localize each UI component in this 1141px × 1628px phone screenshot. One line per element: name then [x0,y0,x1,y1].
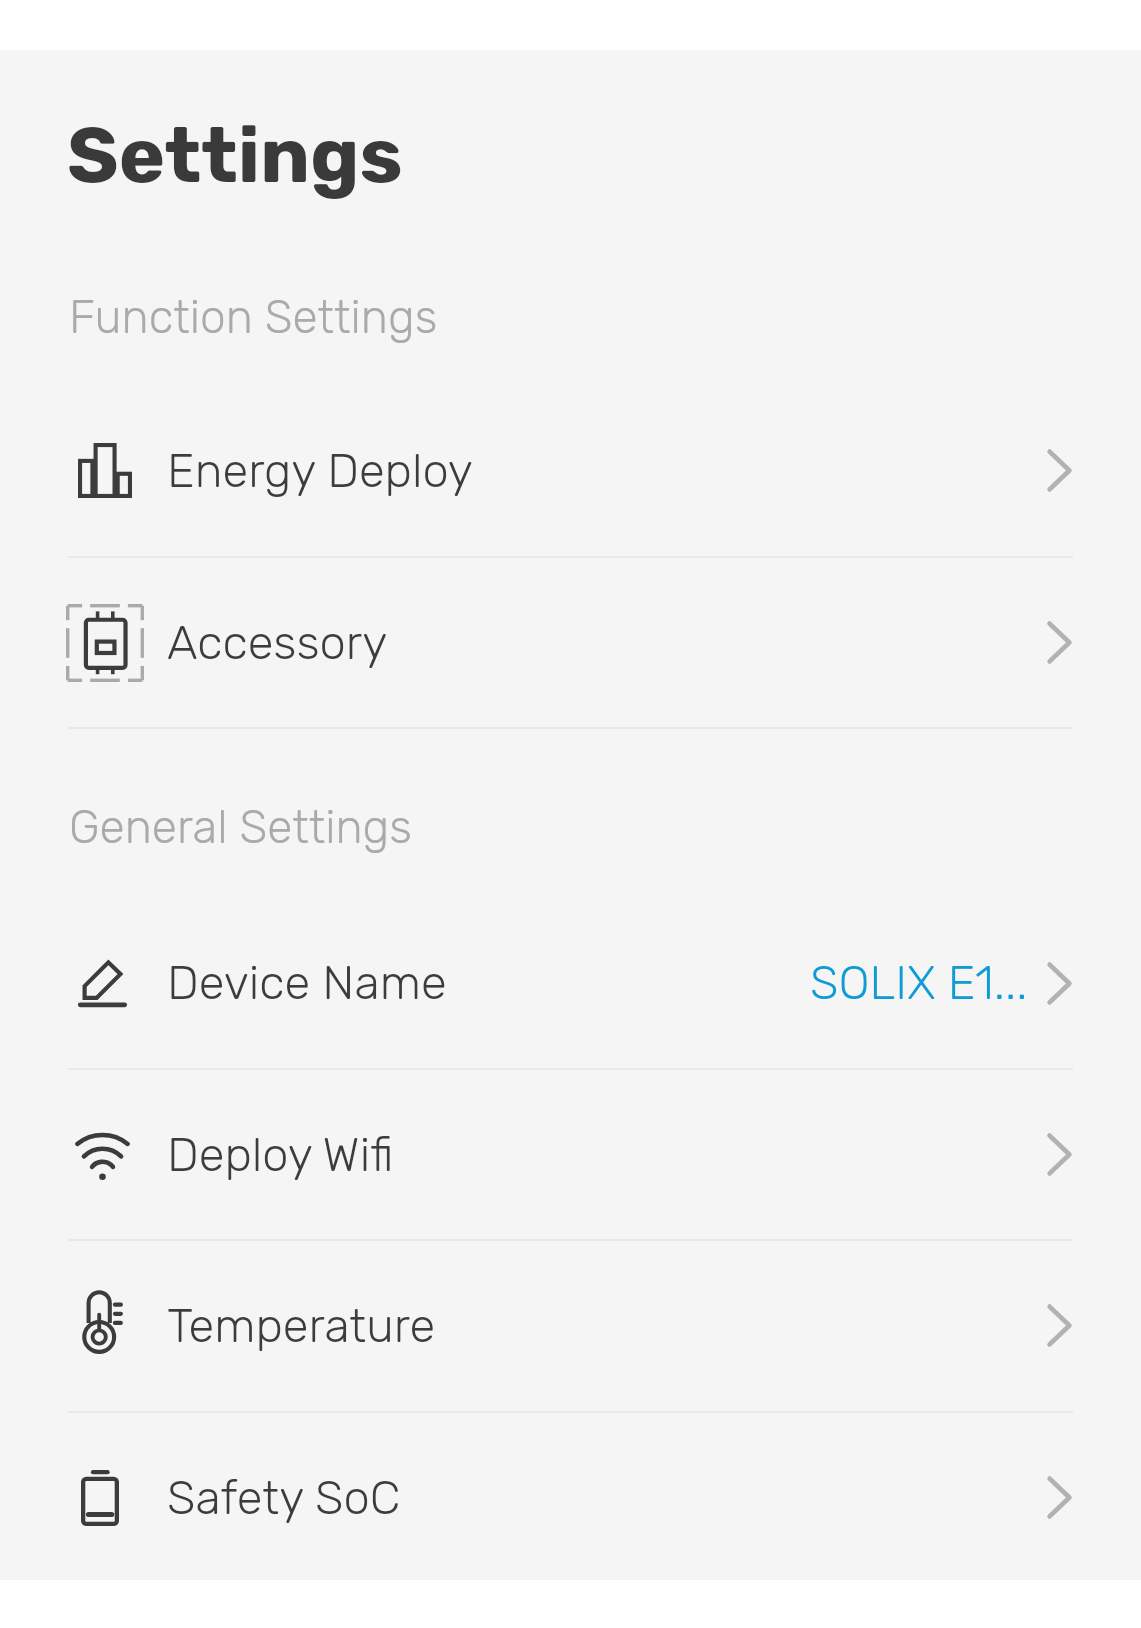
staticText: Device Name [167,955,447,1011]
staticText: Function Settings [69,290,438,345]
button[interactable]: Temperature [0,1240,1141,1411]
staticText: General Settings [69,800,412,855]
staticText: Accessory [167,615,388,671]
button[interactable]: Safety SoC [0,1412,1141,1583]
button[interactable]: Device Name [0,897,1141,1068]
button[interactable]: Accessory [0,557,1141,728]
staticText: Temperature [167,1298,436,1354]
button[interactable]: Energy Deploy [0,385,1141,556]
staticText: Energy Deploy [167,443,473,499]
staticText: Deploy Wifi [167,1127,394,1183]
staticText: SOLIX E1... [810,955,1028,1011]
button[interactable]: Deploy Wifi [0,1069,1141,1240]
staticText: Settings [67,109,403,201]
staticText: Safety SoC [167,1470,401,1526]
